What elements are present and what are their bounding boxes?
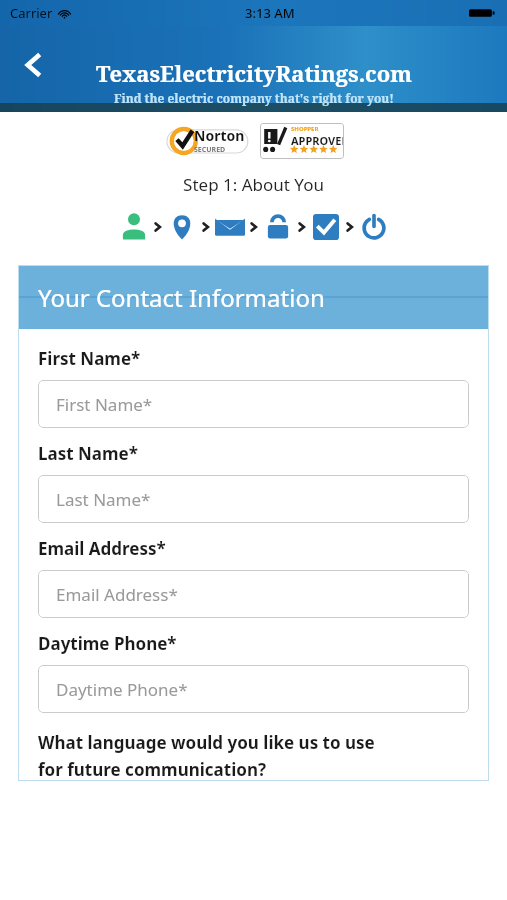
staticText: Email Address* — [38, 537, 166, 560]
staticText: SECURED — [194, 145, 226, 155]
button[interactable]: First Name* — [38, 380, 469, 428]
staticText: Carrier — [10, 4, 53, 22]
staticText: SHOPPER — [291, 125, 319, 133]
staticText: Last Name* — [56, 488, 151, 511]
button[interactable]: Your Contact Information — [18, 265, 489, 329]
button[interactable]: Confirm — [308, 209, 344, 245]
staticText: 3:13 AM — [245, 4, 295, 22]
staticText: Daytime Phone* — [38, 632, 177, 655]
staticText: What language would you like us to use — [38, 731, 375, 754]
staticText: Find the electric company that's right f… — [114, 90, 394, 106]
button[interactable]: Personal information — [116, 209, 152, 245]
button[interactable]: Norton Secured — [163, 121, 251, 161]
button[interactable]: Shopper Approved — [260, 123, 344, 159]
staticText: Daytime Phone* — [56, 678, 188, 701]
staticText: Norton — [194, 126, 245, 145]
staticText: Email Address* — [56, 583, 178, 606]
button[interactable]: Security — [260, 209, 296, 245]
staticText: Your Contact Information — [38, 281, 325, 314]
button[interactable]: Email Address* — [38, 570, 469, 618]
staticText: First Name* — [38, 347, 141, 370]
button[interactable]: Daytime Phone* — [38, 665, 469, 713]
staticText: First Name* — [56, 393, 153, 416]
staticText: for future communication? — [38, 758, 267, 781]
button[interactable]: Last Name* — [38, 475, 469, 523]
staticText: APPROVED — [291, 133, 344, 148]
staticText: Step 1: About You — [0, 173, 507, 196]
staticText: Last Name* — [38, 442, 138, 465]
button[interactable]: Email — [212, 209, 248, 245]
button[interactable]: Back — [8, 39, 60, 91]
button[interactable]: Service start — [356, 209, 392, 245]
button[interactable]: Address — [164, 209, 200, 245]
staticText: TexasElectricityRatings.com — [96, 58, 412, 88]
